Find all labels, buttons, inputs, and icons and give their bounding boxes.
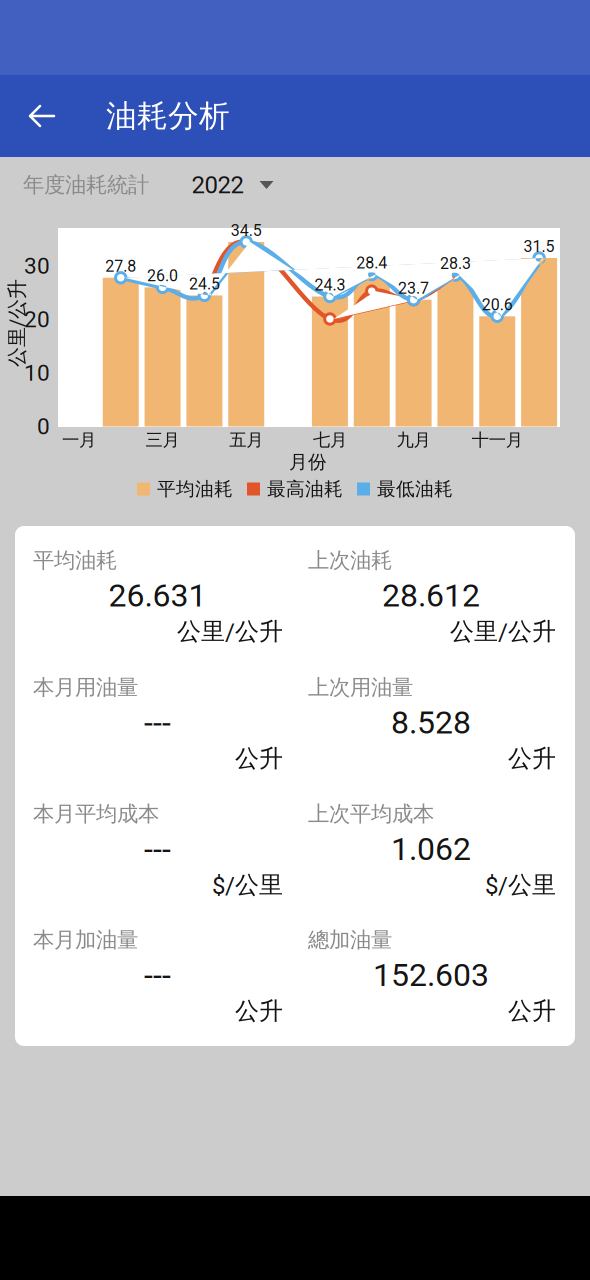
staticText: 26.631 (108, 577, 206, 614)
staticText: 公里/公升 (450, 616, 556, 647)
staticText: 月份 (289, 450, 327, 474)
staticText: 總加油量 (308, 927, 392, 953)
staticText: 三月 (146, 429, 180, 451)
staticText: 最低油耗 (377, 477, 453, 501)
staticText: 本月用油量 (33, 674, 138, 701)
staticText: 10 (24, 360, 50, 386)
staticText: 26.0 (147, 266, 178, 285)
staticText: 年度油耗統計 (23, 172, 149, 198)
staticText: 本月加油量 (33, 927, 138, 953)
staticText: 最高油耗 (267, 477, 343, 501)
staticText: 上次用油量 (308, 674, 413, 701)
staticText: 公升 (508, 996, 556, 1026)
staticText: 平均油耗 (33, 547, 117, 574)
button[interactable]: 2022 (171, 156, 293, 214)
staticText: 34.5 (231, 221, 262, 240)
staticText: 平均油耗 (157, 477, 233, 501)
staticText: 152.603 (373, 956, 489, 994)
staticText: 30 (24, 253, 50, 279)
staticText: --- (144, 956, 171, 994)
staticText: 24.5 (189, 275, 220, 293)
staticText: 十一月 (472, 429, 523, 451)
staticText: 20.6 (482, 295, 513, 314)
staticText: 公升 (235, 743, 283, 774)
staticText: 0 (37, 413, 50, 440)
staticText: 2022 (191, 171, 243, 199)
staticText: 一月 (62, 429, 96, 451)
staticText: 20 (24, 306, 50, 333)
staticText: 上次平均成本 (308, 801, 434, 827)
staticText: $/公里 (485, 870, 556, 900)
staticText: --- (144, 704, 171, 741)
staticText: $/公里 (212, 870, 283, 900)
button[interactable]: Back (0, 75, 80, 157)
staticText: 五月 (229, 429, 263, 451)
staticText: 公升 (508, 743, 556, 774)
staticText: 公里/公升 (0, 310, 61, 336)
staticText: 九月 (397, 429, 431, 451)
staticText: 28.4 (356, 254, 387, 272)
staticText: 油耗分析 (106, 97, 230, 135)
staticText: 上次油耗 (308, 547, 392, 574)
staticText: 24.3 (314, 276, 345, 294)
staticText: 8.528 (391, 704, 471, 741)
staticText: 28.612 (382, 577, 480, 614)
staticText: 本月平均成本 (33, 801, 159, 827)
staticText: 公里/公升 (177, 616, 283, 647)
staticText: 28.3 (440, 254, 471, 273)
staticText: 23.7 (398, 279, 429, 298)
staticText: --- (144, 830, 171, 868)
staticText: 27.8 (105, 257, 136, 276)
staticText: 七月 (313, 429, 347, 451)
staticText: 31.5 (524, 237, 555, 256)
staticText: 公升 (235, 996, 283, 1026)
staticText: 1.062 (391, 830, 471, 868)
